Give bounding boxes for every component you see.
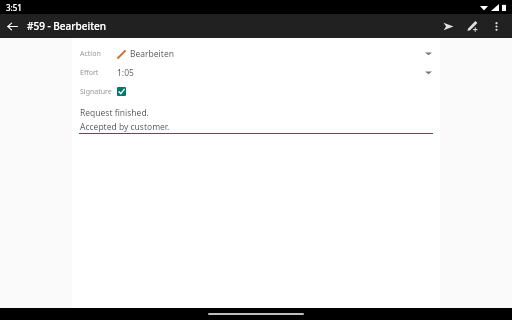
button[interactable]: Request finished. <box>72 106 440 120</box>
staticText: Accepted by customer. <box>80 121 170 133</box>
button[interactable]: Back <box>0 14 24 38</box>
staticText: 3:51 <box>6 2 22 13</box>
button[interactable]: Send <box>436 14 460 38</box>
staticText: Effort <box>80 68 113 78</box>
button[interactable]: Action <box>72 44 440 63</box>
button[interactable]: Signature captured <box>117 87 126 96</box>
staticText: Action <box>80 49 113 59</box>
staticText: 1:05 <box>117 67 134 79</box>
staticText: Request finished. <box>80 107 149 119</box>
button[interactable]: Effort <box>72 63 440 82</box>
button[interactable]: Signature <box>72 82 440 101</box>
button[interactable]: Add signature <box>460 14 484 38</box>
staticText: Signature <box>80 87 113 97</box>
button[interactable]: Accepted by customer. <box>72 120 440 134</box>
staticText: Bearbeiten <box>130 48 174 60</box>
staticText: #59 - Bearbeiten <box>27 19 107 33</box>
button[interactable]: More options <box>484 14 508 38</box>
